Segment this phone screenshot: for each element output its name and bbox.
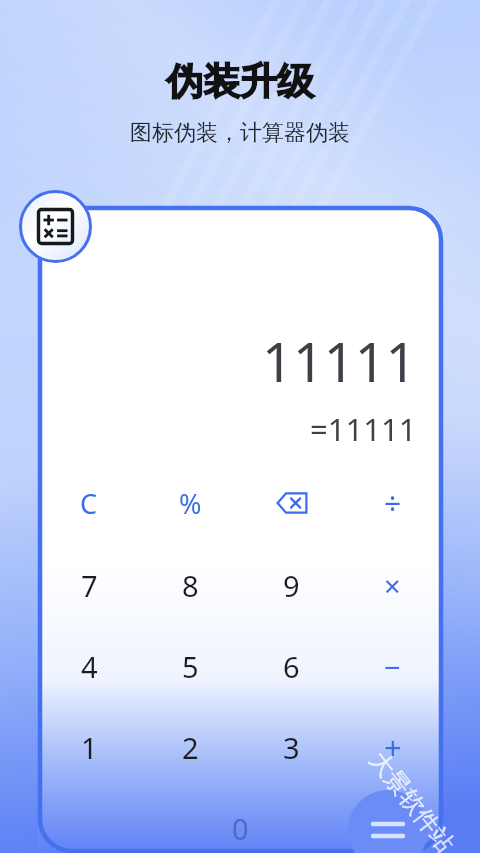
button[interactable]: Backspace [241, 473, 342, 533]
staticText: 7 [81, 566, 98, 605]
staticText: 11111 [262, 324, 417, 398]
staticText: 4 [81, 647, 98, 686]
staticText: − [384, 647, 401, 686]
button[interactable]: Equals [348, 790, 428, 853]
button[interactable]: + [342, 717, 443, 777]
button[interactable]: 4 [38, 636, 140, 696]
button[interactable]: ÷ [342, 473, 443, 533]
staticText: 0 [232, 809, 249, 848]
staticText: 伪装升级 [166, 58, 314, 105]
button[interactable]: 8 [140, 555, 241, 615]
button[interactable]: 2 [140, 717, 241, 777]
button[interactable]: 3 [241, 717, 342, 777]
button[interactable]: C [38, 473, 140, 533]
button[interactable]: . [308, 798, 443, 853]
button[interactable]: % [140, 473, 241, 533]
button[interactable]: 5 [140, 636, 241, 696]
staticText: . [372, 809, 380, 848]
staticText: 2 [182, 728, 199, 767]
button[interactable] [38, 798, 173, 853]
staticText: 6 [283, 647, 300, 686]
button[interactable]: 1 [38, 717, 140, 777]
button[interactable]: × [342, 555, 443, 615]
staticText: ÷ [384, 483, 402, 524]
staticText: + [384, 726, 402, 768]
staticText: % [179, 485, 202, 522]
button[interactable]: − [342, 636, 443, 696]
button[interactable]: 0 [173, 798, 308, 853]
button[interactable]: Calculator disguise icon [19, 190, 92, 263]
staticText: 5 [182, 647, 199, 686]
button[interactable]: 7 [38, 555, 140, 615]
staticText: 图标伪装，计算器伪装 [130, 119, 350, 147]
staticText: 大景软件站 [363, 745, 461, 853]
staticText: 8 [182, 566, 199, 605]
staticText: 1 [81, 728, 98, 767]
staticText: 9 [283, 566, 300, 605]
button[interactable]: 9 [241, 555, 342, 615]
staticText: C [80, 485, 98, 522]
button[interactable]: 6 [241, 636, 342, 696]
staticText: × [384, 566, 401, 605]
staticText: 3 [283, 728, 300, 767]
staticText: =11111 [310, 408, 417, 450]
